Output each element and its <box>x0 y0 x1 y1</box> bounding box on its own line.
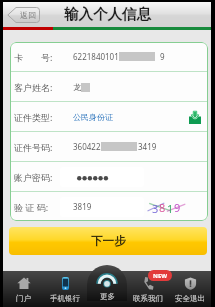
staticText: 6221840101 <box>73 51 119 62</box>
staticText: 9 <box>160 51 165 62</box>
button[interactable]: 证件类型: <box>10 102 208 131</box>
button[interactable]: 更多 <box>87 265 127 301</box>
button[interactable]: 刷新验证码 <box>145 198 187 216</box>
button[interactable]: 卡 号: <box>10 42 208 71</box>
staticText: 公民身份证 <box>73 112 113 122</box>
button[interactable]: 返回 <box>7 7 40 23</box>
button[interactable]: 证件号码: <box>10 132 208 161</box>
staticText: 安全退出 <box>175 294 205 303</box>
staticText: 手机银行 <box>50 294 80 303</box>
staticText: 龙 <box>73 82 81 92</box>
staticText: 客户姓名: <box>14 81 53 93</box>
button[interactable]: 验 证 码: <box>10 192 208 221</box>
staticText: 8 <box>159 200 166 215</box>
staticText: 门户 <box>16 294 31 303</box>
staticText: NEW <box>153 272 168 280</box>
button[interactable]: 手机银行 <box>44 271 85 307</box>
staticText: 更多 <box>100 292 115 301</box>
staticText: 卡 号: <box>14 51 53 63</box>
staticText: 下一步 <box>91 234 126 248</box>
button[interactable]: 客户姓名: <box>10 72 208 101</box>
button[interactable]: 安全退出 <box>169 271 211 307</box>
button[interactable]: 联系我们 <box>127 271 169 307</box>
staticText: 3 <box>152 201 159 216</box>
staticText: 联系我们 <box>133 294 163 303</box>
staticText: 3819 <box>73 201 92 212</box>
staticText: 9 <box>174 200 181 215</box>
staticText: 3419 <box>138 141 157 152</box>
button[interactable]: 账户密码: <box>10 162 208 191</box>
staticText: 360422 <box>73 141 101 152</box>
staticText: 证件类型: <box>14 111 53 123</box>
staticText: 验 证 码: <box>14 201 49 213</box>
staticText: 1 <box>167 201 174 216</box>
staticText: 证件号码: <box>14 141 53 153</box>
button[interactable]: 选择证件类型 <box>186 108 204 126</box>
staticText: 输入个人信息 <box>64 5 151 23</box>
button[interactable]: 下一步 <box>9 227 207 255</box>
staticText: 账户密码: <box>14 171 53 183</box>
staticText: 返回 <box>20 10 36 20</box>
button[interactable]: 门户 <box>3 271 44 307</box>
